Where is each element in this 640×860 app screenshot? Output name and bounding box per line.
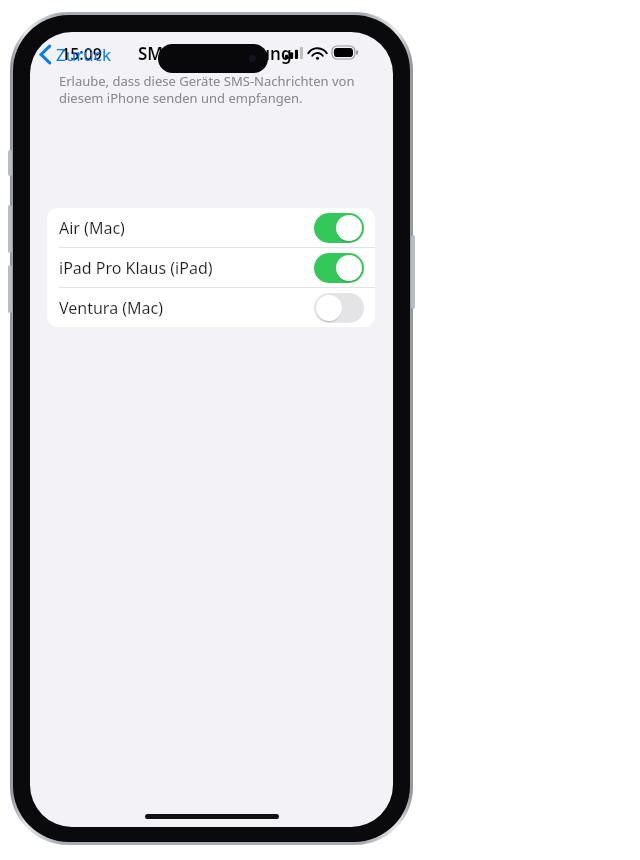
button[interactable]: Zurück xyxy=(36,40,115,69)
button[interactable]: iPad Pro Klaus (iPad) xyxy=(47,248,375,288)
other: Aus xyxy=(314,293,364,323)
staticText: SMS-Weiterleitung xyxy=(138,42,292,65)
staticText: Air (Mac) xyxy=(59,217,314,239)
staticText: Erlaube, dass diese Geräte SMS-Nachricht… xyxy=(59,72,365,107)
other: Ein xyxy=(314,253,364,283)
staticText: Ventura (Mac) xyxy=(59,297,314,319)
staticText: iPad Pro Klaus (iPad) xyxy=(59,257,314,279)
staticText: Zurück xyxy=(56,43,111,66)
button[interactable]: Air (Mac) xyxy=(47,208,375,248)
button[interactable]: Ventura (Mac) xyxy=(47,288,375,327)
other: Ein xyxy=(314,213,364,243)
staticText: 15:09 xyxy=(61,43,103,65)
